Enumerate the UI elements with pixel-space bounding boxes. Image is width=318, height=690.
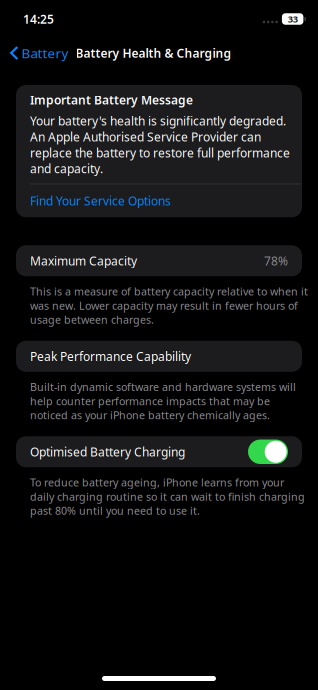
- staticText: Maximum Capacity: [30, 253, 137, 269]
- staticText: 14:25: [23, 11, 54, 27]
- button[interactable]: Optimised Battery Charging: [0, 436, 318, 467]
- staticText: Battery: [21, 44, 68, 62]
- staticText: To reduce battery ageing, iPhone learns …: [30, 475, 305, 518]
- staticText: This is a measure of battery capacity re…: [30, 284, 308, 327]
- button[interactable]: Maximum Capacity: [0, 245, 318, 276]
- button[interactable]: Peak Performance Capability: [0, 341, 318, 372]
- button[interactable]: Find Your Service Options: [16, 184, 302, 217]
- button[interactable]: Battery: [0, 38, 72, 68]
- staticText: Optimised Battery Charging: [30, 444, 185, 460]
- staticText: 78%: [264, 253, 288, 269]
- staticText: Built-in dynamic software and hardware s…: [30, 380, 296, 422]
- staticText: Your battery's health is significantly d…: [30, 113, 290, 177]
- staticText: Find Your Service Options: [30, 193, 171, 209]
- staticText: Peak Performance Capability: [30, 348, 191, 364]
- staticText: Important Battery Message: [30, 92, 193, 108]
- staticText: 33: [288, 13, 298, 25]
- staticText: Battery Health & Charging: [75, 45, 231, 61]
